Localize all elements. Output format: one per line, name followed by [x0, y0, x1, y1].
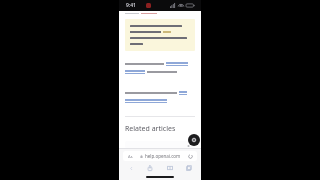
button[interactable]: Tabs	[184, 163, 194, 173]
button[interactable]: Back	[126, 163, 136, 173]
button[interactable]: Text size options	[127, 153, 134, 159]
button[interactable]: Share	[145, 163, 155, 173]
button[interactable]: Open assistant	[188, 134, 200, 146]
staticText: Aᴀ	[128, 154, 133, 159]
button[interactable]: Bookmarks	[165, 163, 175, 173]
button[interactable]: Reload page	[188, 154, 193, 159]
staticText: Related articles	[125, 124, 176, 134]
staticText: 9:41	[126, 2, 136, 9]
button[interactable]	[125, 141, 195, 148]
staticText: help.openai.com	[145, 153, 181, 159]
button[interactable]: Text size options	[123, 151, 197, 161]
